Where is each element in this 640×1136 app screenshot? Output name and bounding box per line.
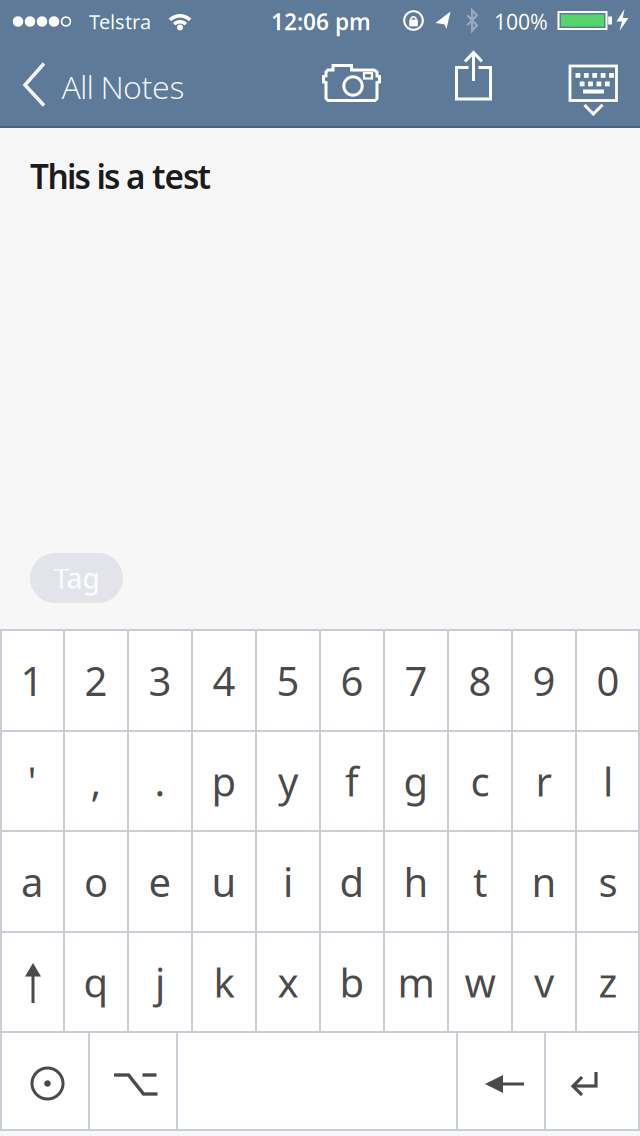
button[interactable]: j [129, 932, 191, 1031]
staticText: i [283, 855, 293, 908]
staticText: 8 [468, 654, 491, 707]
staticText: l [603, 754, 613, 807]
button[interactable]: 9 [513, 631, 575, 730]
button[interactable]: 2 [65, 631, 127, 730]
button[interactable]: 5 [257, 631, 319, 730]
button[interactable]: e [129, 832, 191, 931]
staticText: 6 [340, 654, 363, 707]
staticText: r [535, 754, 552, 807]
button[interactable]: v [513, 932, 575, 1031]
staticText: m [397, 955, 434, 1008]
button[interactable]: 8 [449, 631, 511, 730]
staticText: 5 [276, 654, 299, 707]
button[interactable]: s [577, 832, 639, 931]
button[interactable]: x [257, 932, 319, 1031]
staticText: y [278, 754, 298, 807]
staticText: s [598, 855, 617, 908]
button[interactable]: 6 [321, 631, 383, 730]
button[interactable]: d [321, 832, 383, 931]
button[interactable]: u [193, 832, 255, 931]
button[interactable] [438, 44, 508, 108]
button[interactable]: m [385, 932, 447, 1031]
staticText: j [155, 955, 165, 1008]
staticText: w [464, 955, 495, 1008]
staticText: f [345, 754, 359, 807]
button[interactable]: . [129, 731, 191, 830]
button[interactable]: b [321, 932, 383, 1031]
button[interactable]: 7 [385, 631, 447, 730]
staticText: 100% [494, 7, 548, 36]
staticText: d [339, 855, 364, 908]
staticText: All Notes [61, 65, 184, 108]
button[interactable]: a [1, 832, 63, 931]
button[interactable]: , [65, 731, 127, 830]
button[interactable]: 3 [129, 631, 191, 730]
staticText: b [339, 955, 364, 1008]
button[interactable]: ' [1, 731, 63, 830]
staticText: Telstra [89, 8, 151, 35]
staticText: z [598, 955, 617, 1008]
button[interactable]: n [513, 832, 575, 931]
button[interactable]: g [385, 731, 447, 830]
staticText: h [403, 855, 428, 908]
button[interactable]: Tag [30, 553, 123, 603]
button[interactable] [558, 58, 628, 120]
button[interactable] [90, 1031, 176, 1130]
staticText: 7 [404, 654, 427, 707]
button[interactable]: o [65, 832, 127, 931]
staticText: 1 [20, 654, 43, 707]
button[interactable]: All Notes [14, 52, 210, 116]
staticText: o [84, 855, 108, 908]
button[interactable]: 0 [577, 631, 639, 730]
button[interactable]: 4 [193, 631, 255, 730]
button[interactable]: f [321, 731, 383, 830]
staticText: . [154, 754, 165, 807]
staticText: 12:06 pm [271, 6, 371, 36]
staticText: ' [27, 754, 36, 807]
button[interactable]: w [449, 932, 511, 1031]
staticText: k [213, 955, 234, 1008]
staticText: Tag [53, 559, 99, 597]
button[interactable]: h [385, 832, 447, 931]
staticText: q [83, 955, 108, 1008]
staticText: p [211, 754, 236, 807]
staticText: This is a test [30, 154, 211, 198]
button[interactable] [0, 1031, 88, 1130]
button[interactable]: q [65, 932, 127, 1031]
staticText: 3 [148, 654, 171, 707]
button[interactable] [178, 1031, 456, 1130]
button[interactable]: y [257, 731, 319, 830]
staticText: , [90, 754, 101, 807]
button[interactable]: z [577, 932, 639, 1031]
button[interactable]: l [577, 731, 639, 830]
staticText: v [534, 955, 554, 1008]
staticText: e [148, 855, 171, 908]
staticText: a [21, 855, 43, 908]
button[interactable]: t [449, 832, 511, 931]
staticText: t [473, 855, 487, 908]
button[interactable]: r [513, 731, 575, 830]
button[interactable] [458, 1031, 544, 1130]
staticText: 0 [596, 654, 619, 707]
button[interactable]: 1 [1, 631, 63, 730]
staticText: n [531, 855, 556, 908]
button[interactable]: i [257, 832, 319, 931]
staticText: 2 [84, 654, 107, 707]
button[interactable]: p [193, 731, 255, 830]
button[interactable]: c [449, 731, 511, 830]
staticText: 9 [532, 654, 555, 707]
button[interactable] [312, 52, 392, 112]
staticText: x [277, 955, 298, 1008]
staticText: g [403, 754, 428, 807]
staticText: u [211, 855, 236, 908]
staticText: 4 [212, 654, 235, 707]
staticText: c [470, 754, 489, 807]
button[interactable]: k [193, 932, 255, 1031]
button[interactable] [546, 1031, 639, 1130]
button[interactable] [1, 932, 63, 1031]
